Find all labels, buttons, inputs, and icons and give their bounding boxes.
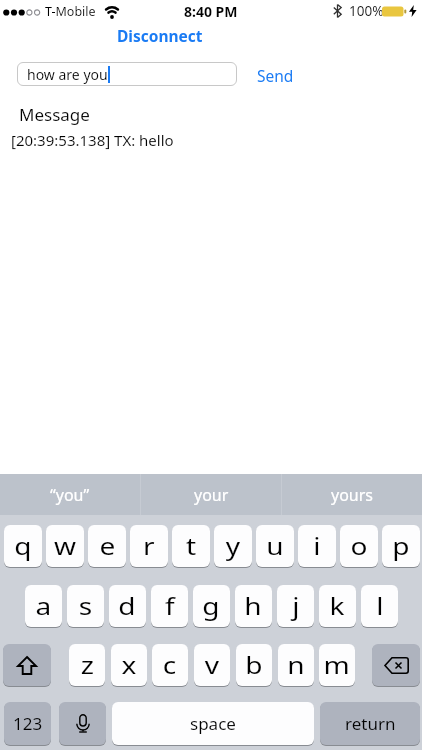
staticText: 8:40 PM xyxy=(184,2,238,21)
button[interactable]: e xyxy=(88,525,126,567)
staticText: f xyxy=(165,590,175,621)
staticText: a xyxy=(36,590,51,621)
button[interactable]: Send xyxy=(257,65,294,86)
staticText: b xyxy=(245,649,264,680)
button[interactable]: i xyxy=(298,525,336,567)
button[interactable]: z xyxy=(69,644,105,686)
staticText: o xyxy=(350,530,368,561)
button[interactable]: q xyxy=(4,525,42,567)
staticText: m xyxy=(324,649,350,680)
button[interactable]: u xyxy=(256,525,294,567)
button[interactable]: y xyxy=(214,525,252,567)
staticText: l xyxy=(376,590,384,621)
staticText: 100% xyxy=(349,2,384,20)
staticText: s xyxy=(79,590,93,621)
button[interactable]: return xyxy=(320,702,420,745)
button[interactable]: x xyxy=(111,644,147,686)
button[interactable]: p xyxy=(382,525,420,567)
staticText: how are you xyxy=(27,65,108,84)
button[interactable]: w xyxy=(46,525,84,567)
button[interactable]: f xyxy=(151,585,188,627)
button[interactable]: your xyxy=(141,474,281,515)
button[interactable]: o xyxy=(340,525,378,567)
button[interactable]: t xyxy=(172,525,210,567)
button[interactable] xyxy=(3,644,51,686)
staticText: h xyxy=(244,590,263,621)
staticText: d xyxy=(118,590,137,621)
button[interactable]: b xyxy=(236,644,272,686)
staticText: e xyxy=(100,530,115,561)
staticText: n xyxy=(287,649,306,680)
button[interactable]: v xyxy=(194,644,230,686)
button[interactable]: d xyxy=(109,585,146,627)
staticText: j xyxy=(292,590,300,621)
button[interactable]: 123 xyxy=(4,702,51,745)
staticText: Message xyxy=(19,103,90,126)
staticText: “you” xyxy=(50,484,90,506)
staticText: u xyxy=(266,530,285,561)
button[interactable]: l xyxy=(361,585,398,627)
staticText: i xyxy=(313,530,321,561)
staticText: k xyxy=(330,590,345,621)
button[interactable]: space xyxy=(112,702,314,745)
staticText: return xyxy=(345,712,396,735)
staticText: w xyxy=(54,530,77,561)
button[interactable]: k xyxy=(319,585,356,627)
button[interactable]: n xyxy=(278,644,314,686)
button[interactable]: s xyxy=(67,585,104,627)
staticText: r xyxy=(143,530,155,561)
staticText: q xyxy=(14,530,33,561)
staticText: t xyxy=(186,530,197,561)
button[interactable] xyxy=(59,702,106,745)
staticText: c xyxy=(163,649,177,680)
button[interactable]: “you” xyxy=(0,474,140,515)
staticText: g xyxy=(202,590,221,621)
staticText: space xyxy=(190,712,236,735)
button[interactable]: r xyxy=(130,525,168,567)
button[interactable]: yours xyxy=(282,474,422,515)
button[interactable]: g xyxy=(193,585,230,627)
staticText: y xyxy=(226,530,240,561)
button[interactable]: Disconnect xyxy=(117,25,203,46)
button[interactable]: h xyxy=(235,585,272,627)
staticText: p xyxy=(392,530,411,561)
staticText: x xyxy=(122,649,137,680)
staticText: v xyxy=(205,649,219,680)
staticText: z xyxy=(81,649,94,680)
staticText: your xyxy=(194,484,229,506)
button[interactable] xyxy=(372,644,420,686)
button[interactable]: m xyxy=(319,644,355,686)
staticText: T-Mobile xyxy=(45,3,96,20)
staticText: [20:39:53.138] TX: hello xyxy=(11,130,174,150)
staticText: 123 xyxy=(13,712,43,735)
staticText: yours xyxy=(331,484,374,506)
button[interactable]: how are you xyxy=(17,62,237,86)
button[interactable]: c xyxy=(152,644,188,686)
button[interactable]: a xyxy=(25,585,62,627)
button[interactable]: j xyxy=(277,585,314,627)
